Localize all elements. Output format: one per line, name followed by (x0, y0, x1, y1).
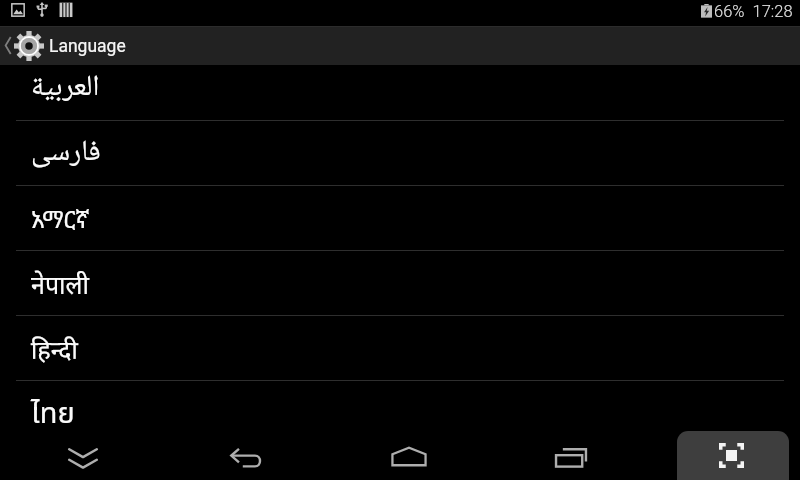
staticText: हिन्दी (31, 332, 78, 366)
button[interactable]: Hide navigation bar (55, 434, 111, 480)
staticText: Language (49, 36, 126, 57)
button[interactable]: Recent apps (543, 434, 599, 480)
button[interactable]: العربية (0, 65, 800, 121)
button[interactable]: Back (218, 434, 274, 480)
staticText: ไทย (31, 392, 75, 436)
staticText: አማርኛ (31, 202, 90, 235)
staticText: فارسی (31, 129, 101, 178)
button[interactable]: नेपाली (0, 251, 800, 316)
staticText: 66% 17:28 (714, 2, 793, 21)
button[interactable]: Screenshot (677, 431, 789, 479)
staticText: नेपाली (31, 267, 89, 301)
button[interactable]: Home (381, 434, 437, 480)
button[interactable]: ไทย (0, 381, 800, 446)
button[interactable]: فارسی (0, 121, 800, 186)
button[interactable]: हिन्दी (0, 316, 800, 381)
staticText: العربية (31, 65, 100, 113)
button[interactable]: Language (0, 26, 800, 65)
button[interactable]: አማርኛ (0, 186, 800, 251)
